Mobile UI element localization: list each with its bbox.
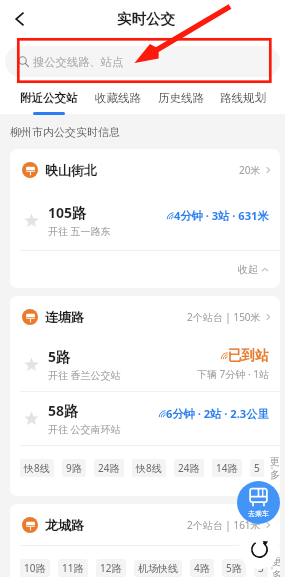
- staticText: 开往 五一路东: [48, 224, 111, 238]
- button[interactable]: 去乘车: [237, 481, 280, 524]
- staticText: 5路: [48, 347, 71, 366]
- button[interactable]: 12路: [96, 559, 126, 577]
- staticText: 4路: [194, 561, 210, 575]
- button[interactable]: 搜公交线路、站点: [5, 46, 280, 77]
- staticText: 105路: [48, 203, 87, 222]
- staticText: 快8线: [24, 461, 50, 475]
- staticText: 2个站台 | 161米: [187, 518, 261, 532]
- button[interactable]: 路线规划: [214, 91, 272, 113]
- staticText: 映山街北: [45, 162, 97, 178]
- button[interactable]: 龙城路: [10, 504, 280, 545]
- staticText: 5: [254, 461, 260, 475]
- button[interactable]: 24路: [174, 459, 204, 477]
- staticText: 6分钟 · 2站 · 2.3公里: [166, 406, 269, 421]
- button[interactable]: 附近公交站: [14, 91, 84, 113]
- button[interactable]: 9路: [62, 459, 86, 477]
- button[interactable]: 24路: [94, 459, 124, 477]
- staticText: 开往 公交南环站: [48, 422, 121, 436]
- staticText: 去乘车: [248, 509, 269, 518]
- button[interactable]: 14路: [212, 459, 242, 477]
- staticText: 4分钟 · 3站 · 631米: [174, 208, 269, 223]
- staticText: 快8线: [136, 461, 162, 475]
- button[interactable]: 58路: [10, 392, 280, 445]
- staticText: 14路: [216, 461, 238, 475]
- button[interactable]: 10路: [20, 559, 50, 577]
- staticText: 24路: [98, 461, 120, 475]
- staticText: 11路: [62, 561, 84, 575]
- staticText: 58路: [48, 401, 79, 420]
- button[interactable]: 4路: [190, 559, 214, 577]
- staticText: 下辆 7分钟 · 1站: [197, 367, 269, 381]
- staticText: 龙城路: [45, 517, 84, 533]
- staticText: 搜公交线路、站点: [33, 55, 124, 69]
- button[interactable]: 映山街北: [10, 149, 280, 190]
- staticText: 更多: [270, 455, 272, 481]
- button[interactable]: 快8线: [132, 459, 166, 477]
- button[interactable]: Back: [4, 3, 36, 35]
- staticText: 开往 香兰公交站: [48, 368, 121, 382]
- staticText: 实时公交: [117, 10, 175, 28]
- staticText: 连塘路: [45, 309, 84, 325]
- staticText: 历史线路: [158, 91, 204, 105]
- staticText: 12路: [100, 561, 122, 575]
- staticText: 20米: [239, 163, 261, 177]
- staticText: 已到站: [228, 347, 269, 364]
- button[interactable]: 5路: [10, 337, 280, 391]
- staticText: 机场快线: [138, 562, 178, 575]
- button[interactable]: 3: [254, 559, 268, 577]
- staticText: 3: [258, 561, 264, 575]
- button[interactable]: 5路: [222, 559, 246, 577]
- staticText: 24路: [178, 461, 200, 475]
- staticText: 2个站台 | 150米: [187, 310, 261, 324]
- staticText: 5路: [226, 561, 242, 575]
- button[interactable]: 收起: [10, 251, 280, 288]
- button[interactable]: 快8线: [20, 459, 54, 477]
- button[interactable]: 历史线路: [152, 91, 210, 113]
- button[interactable]: 收藏线路: [89, 91, 147, 113]
- button[interactable]: 5: [250, 459, 264, 477]
- button[interactable]: 刷新: [239, 529, 279, 569]
- staticText: 附近公交站: [20, 91, 78, 105]
- staticText: 收起: [238, 263, 258, 276]
- button[interactable]: 连塘路: [10, 296, 280, 337]
- staticText: 10路: [24, 561, 46, 575]
- staticText: 柳州市内公交实时信息: [10, 125, 120, 139]
- staticText: 收藏线路: [95, 91, 141, 105]
- staticText: 9路: [66, 461, 82, 475]
- button[interactable]: 105路: [10, 190, 280, 250]
- button[interactable]: 11路: [58, 559, 88, 577]
- button[interactable]: 机场快线: [134, 560, 182, 577]
- staticText: 路线规划: [220, 91, 266, 105]
